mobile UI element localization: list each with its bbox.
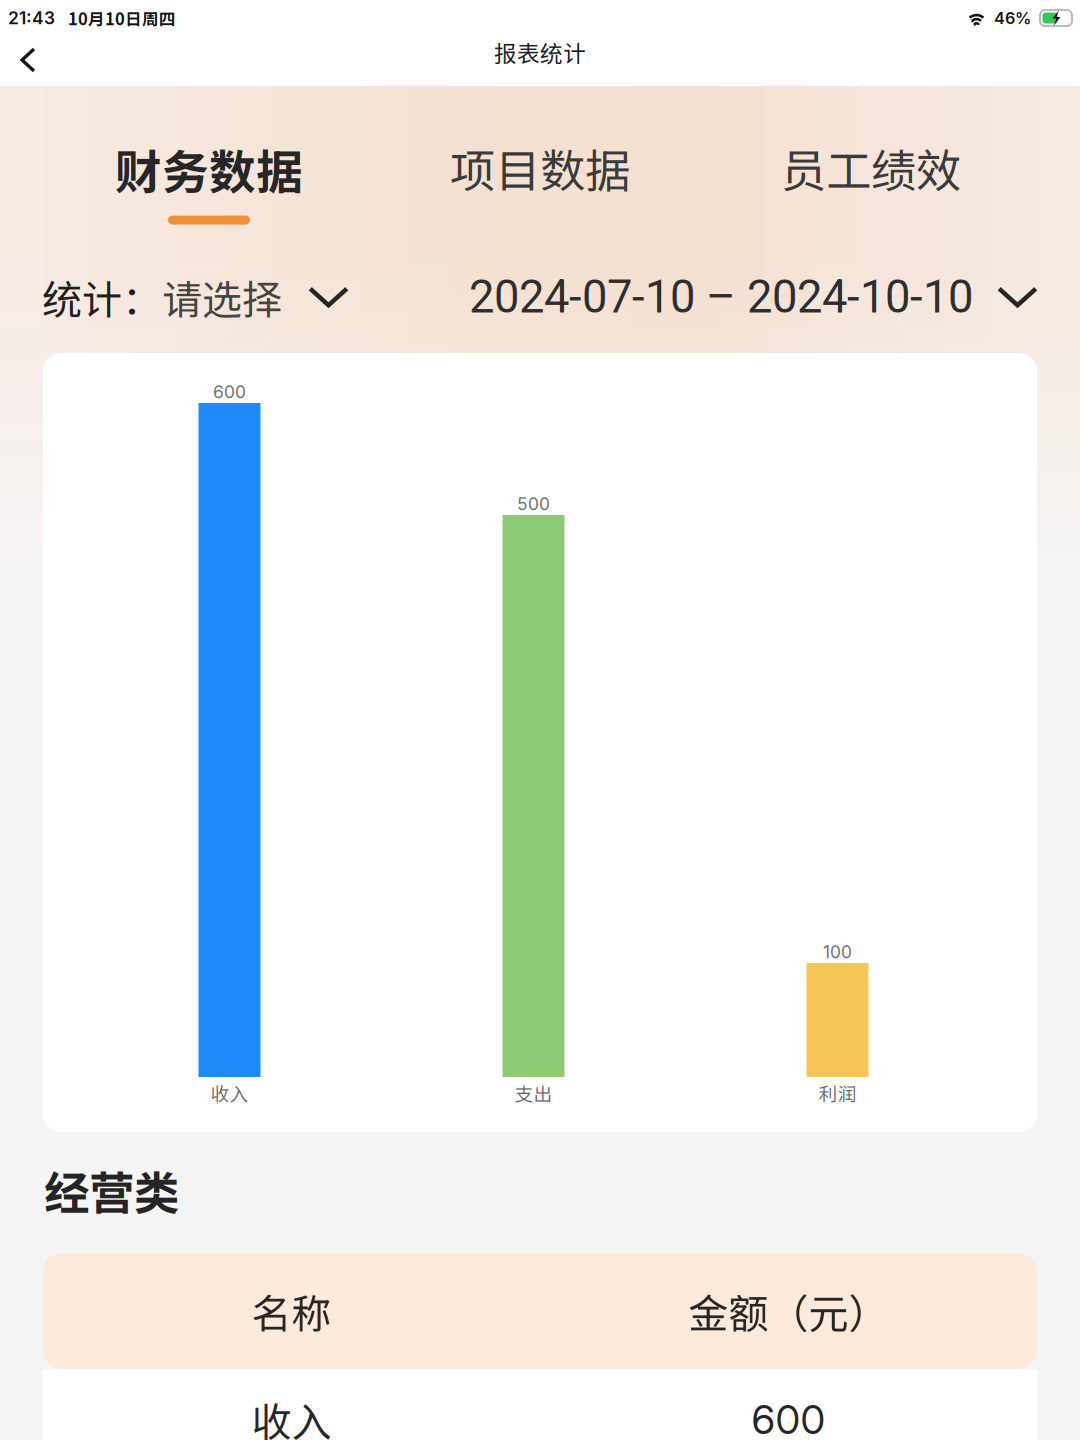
staticText: 支出	[514, 1079, 552, 1106]
staticText: 统计：	[42, 268, 162, 326]
button[interactable]: Back	[0, 35, 92, 85]
staticText: 报表统计	[494, 36, 586, 68]
button[interactable]: 统计：	[42, 268, 349, 326]
staticText: 2024-07-10 – 2024-10-10	[469, 270, 973, 323]
staticText: 600	[213, 381, 246, 402]
staticText: 600	[751, 1395, 825, 1440]
staticText: 员工绩效	[781, 135, 961, 201]
button[interactable]: 项目数据	[374, 129, 705, 225]
staticText: 收入	[210, 1079, 248, 1106]
staticText: 金额（元）	[688, 1282, 888, 1340]
staticText: 财务数据	[115, 135, 303, 203]
button[interactable]: 2024-07-10 – 2024-10-10	[469, 268, 1038, 326]
button[interactable]: 员工绩效	[705, 129, 1036, 225]
staticText: 项目数据	[450, 135, 630, 201]
staticText: 100	[823, 941, 852, 962]
staticText: 经营类	[44, 1157, 179, 1223]
staticText: 21:43	[8, 7, 55, 28]
staticText: 46%	[994, 8, 1031, 28]
staticText: 收入	[251, 1390, 331, 1440]
staticText: 利润	[818, 1079, 856, 1106]
button[interactable]: 财务数据	[43, 129, 374, 225]
staticText: 请选择	[162, 268, 282, 326]
staticText: 名称	[251, 1282, 331, 1340]
staticText: 500	[517, 493, 550, 514]
staticText: 10月10日周四	[68, 6, 176, 30]
